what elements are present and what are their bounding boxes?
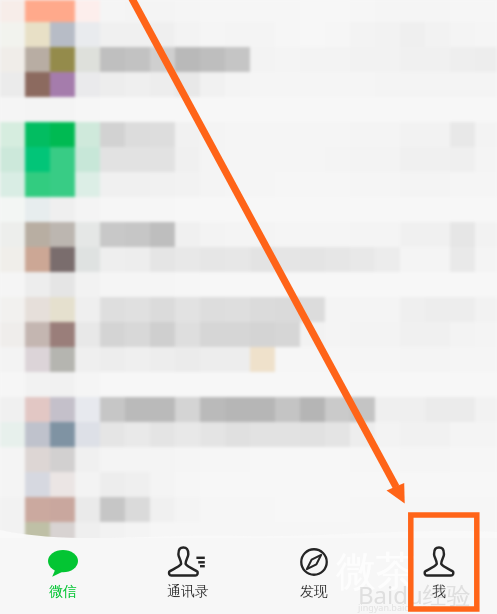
button[interactable]: 通讯录 bbox=[126, 538, 250, 614]
staticText: 微信 bbox=[49, 583, 77, 601]
staticText: jingyan.baidu.com bbox=[358, 601, 436, 613]
button[interactable]: 微信 bbox=[1, 538, 125, 614]
button[interactable]: 发现 bbox=[252, 538, 376, 614]
staticText: 微茶 bbox=[336, 546, 416, 596]
staticText: 通讯录 bbox=[167, 583, 209, 601]
staticText: 发现 bbox=[300, 583, 328, 601]
staticText: Baidu经验 bbox=[358, 578, 471, 611]
staticText: 我 bbox=[432, 583, 446, 601]
button[interactable]: 我 bbox=[377, 538, 497, 614]
